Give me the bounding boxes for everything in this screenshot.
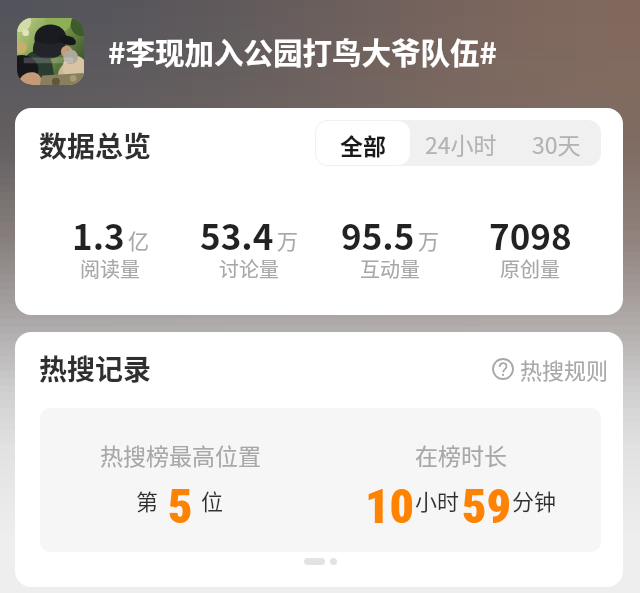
staticText: 热搜榜最高位置	[100, 438, 261, 471]
button[interactable]: 7098	[460, 209, 600, 289]
button[interactable]: Hot search rules	[490, 351, 611, 387]
staticText: 互动量	[360, 254, 420, 283]
button[interactable]: 热搜榜最高位置	[40, 408, 320, 552]
button[interactable]: 53.4	[179, 209, 319, 289]
staticText: 在榜时长	[415, 438, 507, 471]
button[interactable]: 24小时	[411, 120, 511, 166]
button[interactable]: 95.5	[320, 209, 460, 289]
staticText: 热搜规则	[520, 353, 609, 385]
staticText: 位	[201, 484, 224, 516]
staticText: 第	[136, 484, 159, 516]
staticText: 95.5	[341, 209, 415, 260]
button[interactable]: 在榜时长	[320, 408, 601, 552]
staticText: 59	[462, 478, 512, 534]
staticText: 30天	[532, 127, 581, 160]
staticText: 原创量	[500, 254, 560, 283]
staticText: 热搜记录	[39, 348, 152, 389]
staticText: 小时	[415, 484, 460, 516]
staticText: 分钟	[512, 484, 557, 516]
staticText: 全部	[340, 128, 386, 161]
other: Hot search rules	[492, 358, 514, 380]
button[interactable]: #李现加入公园打鸟大爷队伍#	[108, 30, 497, 73]
button[interactable]: 1.3	[40, 209, 180, 289]
staticText: 53.4	[200, 209, 274, 260]
staticText: 数据总览	[39, 125, 152, 166]
button[interactable]: 30天	[511, 120, 601, 166]
staticText: 1.3	[72, 209, 125, 260]
staticText: 10	[365, 478, 415, 534]
staticText: 万	[277, 225, 298, 255]
staticText: 亿	[128, 225, 149, 255]
button[interactable]: Topic cover photo	[17, 18, 84, 85]
staticText: 讨论量	[219, 254, 279, 283]
button[interactable]: 全部	[316, 121, 410, 165]
staticText: 5	[168, 478, 193, 534]
staticText: 阅读量	[80, 254, 140, 283]
staticText: 24小时	[425, 127, 497, 160]
staticText: 7098	[489, 209, 572, 260]
staticText: 万	[418, 225, 439, 255]
